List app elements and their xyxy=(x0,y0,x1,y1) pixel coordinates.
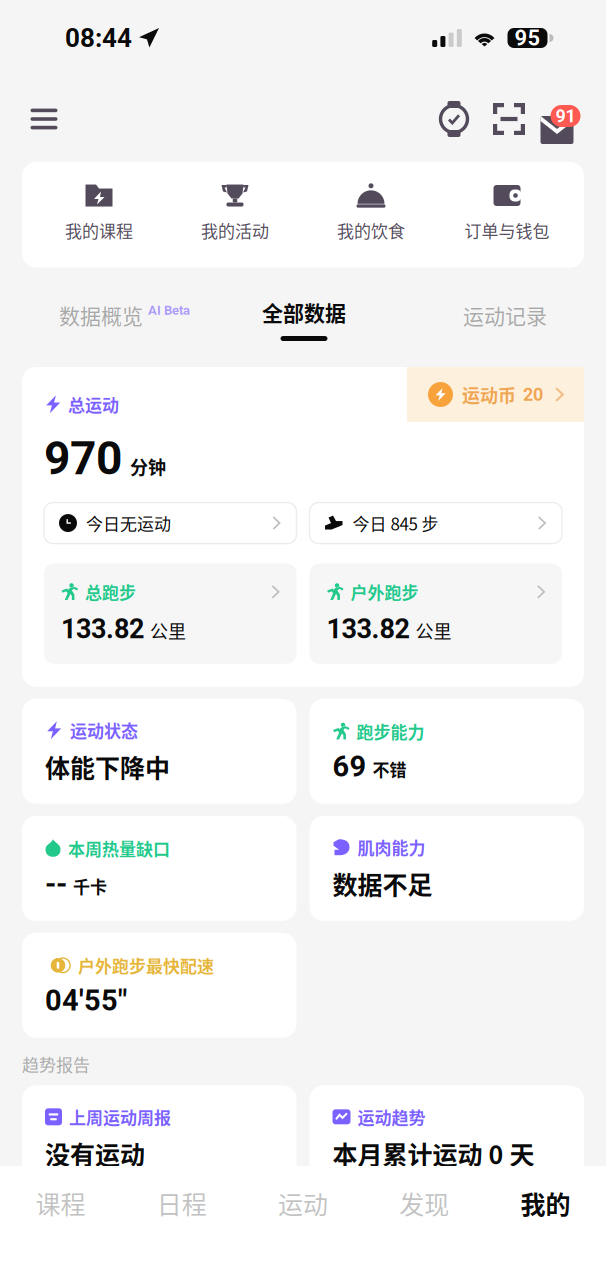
staticText: 全部数据 xyxy=(262,297,346,327)
staticText: 我的 xyxy=(520,1185,570,1221)
staticText: AI Beta xyxy=(148,303,190,318)
button[interactable]: 发现 xyxy=(364,1182,485,1224)
button[interactable]: 运动 xyxy=(242,1182,364,1224)
staticText: 课程 xyxy=(36,1185,86,1221)
staticText: 户外跑步最快配速 xyxy=(78,953,214,978)
staticText: 上周运动周报 xyxy=(69,1104,171,1129)
staticText: 我的课程 xyxy=(65,218,133,243)
staticText: 04'55" xyxy=(45,984,127,1018)
staticText: 数据概览 xyxy=(59,300,143,330)
staticText: 970 xyxy=(44,432,122,485)
staticText: 我的活动 xyxy=(201,218,269,243)
staticText: 体能下降中 xyxy=(45,748,170,785)
button[interactable]: 总跑步 xyxy=(44,563,296,664)
staticText: 分钟 xyxy=(130,453,166,479)
button[interactable]: 今日 845 步 xyxy=(309,502,562,543)
staticText: 没有运动 xyxy=(45,1135,145,1171)
staticText: 跑步能力 xyxy=(356,719,424,744)
button[interactable]: 订单与钱包 xyxy=(439,184,575,243)
staticText: 91 xyxy=(555,105,575,127)
staticText: 户外跑步 xyxy=(350,579,418,604)
staticText: 20 xyxy=(523,384,543,405)
button[interactable]: 运动记录 xyxy=(463,297,584,330)
staticText: 总运动 xyxy=(68,392,119,417)
staticText: 运动币 xyxy=(462,381,516,408)
button[interactable]: 运动状态 xyxy=(22,699,296,804)
button[interactable]: 本周热量缺口 xyxy=(22,816,296,921)
staticText: 运动状态 xyxy=(70,718,138,742)
staticText: 133.82 xyxy=(326,613,409,645)
button[interactable]: 我的饮食 xyxy=(303,184,439,243)
button[interactable]: 我的 xyxy=(485,1182,606,1224)
button[interactable]: 课程 xyxy=(0,1182,121,1224)
staticText: 公里 xyxy=(150,617,186,643)
button[interactable]: 运动币 xyxy=(407,367,584,422)
button[interactable]: 肌肉能力 xyxy=(309,816,584,921)
staticText: 订单与钱包 xyxy=(464,218,549,243)
button[interactable]: 日程 xyxy=(121,1182,242,1224)
button[interactable]: 户外跑步最快配速 xyxy=(22,933,296,1038)
staticText: 本月累计运动 0 天 xyxy=(332,1135,534,1171)
staticText: 运动 xyxy=(278,1185,328,1221)
staticText: 千卡 xyxy=(73,874,107,898)
staticText: 本周热量缺口 xyxy=(68,836,170,861)
button[interactable]: 上周运动周报 xyxy=(22,1085,296,1190)
button[interactable]: 运动趋势 xyxy=(309,1085,584,1190)
button[interactable]: Watch xyxy=(426,93,482,145)
staticText: 今日无运动 xyxy=(86,511,171,535)
button[interactable]: Messages xyxy=(536,93,592,145)
staticText: 133.82 xyxy=(61,613,144,645)
button[interactable]: 全部数据 xyxy=(262,297,346,341)
button[interactable]: 我的活动 xyxy=(167,184,303,243)
staticText: 日程 xyxy=(157,1185,207,1221)
staticText: -- xyxy=(45,867,67,901)
button[interactable]: 今日无运动 xyxy=(44,502,296,543)
staticText: 今日 845 步 xyxy=(352,511,438,535)
staticText: 95 xyxy=(514,25,540,51)
staticText: 总跑步 xyxy=(85,579,136,604)
staticText: 运动记录 xyxy=(463,300,547,330)
staticText: 69 xyxy=(332,750,366,784)
staticText: 数据不足 xyxy=(332,865,432,902)
staticText: 趋势报告 xyxy=(22,1052,90,1076)
staticText: 公里 xyxy=(415,617,451,643)
button[interactable]: Scan xyxy=(482,93,536,145)
staticText: 运动趋势 xyxy=(357,1104,425,1129)
staticText: 我的饮食 xyxy=(337,218,405,243)
button[interactable]: 跑步能力 xyxy=(309,699,584,804)
button[interactable]: 数据概览 xyxy=(22,297,190,330)
staticText: 不错 xyxy=(372,757,406,781)
staticText: 08:44 xyxy=(65,23,132,53)
button[interactable]: Menu xyxy=(15,89,73,149)
staticText: 肌肉能力 xyxy=(357,835,425,859)
staticText: 发现 xyxy=(399,1185,449,1221)
button[interactable]: 我的课程 xyxy=(31,184,167,243)
button[interactable]: 户外跑步 xyxy=(309,563,562,664)
